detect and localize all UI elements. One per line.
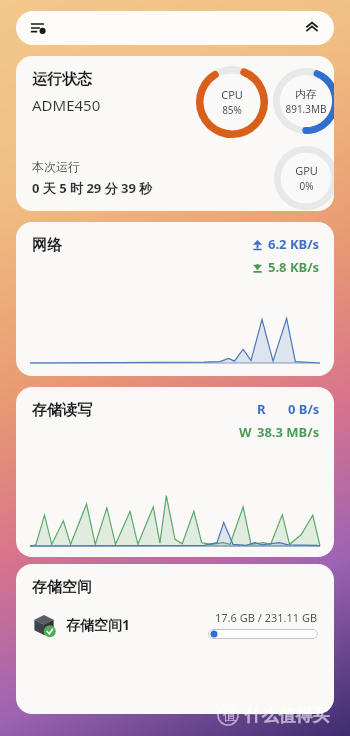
- staticText: 什么值得买: [240, 703, 330, 726]
- button[interactable]: 存储读写: [16, 387, 334, 557]
- staticText: W: [239, 423, 252, 441]
- button[interactable]: CPU 85%: [196, 66, 268, 138]
- staticText: 运行状态: [32, 70, 92, 89]
- staticText: 891.3MB: [285, 102, 327, 116]
- staticText: ADME450: [32, 95, 101, 115]
- button[interactable]: Menu settings: [30, 19, 48, 37]
- staticText: 17.6 GB / 231.11 GB: [215, 610, 318, 625]
- button[interactable]: Collapse: [304, 20, 320, 36]
- staticText: R: [257, 400, 266, 418]
- button[interactable]: 存储空间: [16, 564, 334, 714]
- staticText: 网络: [32, 236, 62, 255]
- staticText: 0%: [299, 179, 314, 193]
- button[interactable]: Menu settings: [16, 11, 334, 45]
- staticText: 5.8 KB/s: [268, 258, 320, 276]
- button[interactable]: GPU 0%: [274, 146, 334, 210]
- button[interactable]: 网络: [16, 222, 334, 376]
- staticText: 值: [223, 707, 236, 723]
- button[interactable]: 运行状态: [16, 56, 334, 211]
- staticText: 38.3 MB/s: [257, 423, 320, 441]
- staticText: 本次运行: [32, 159, 80, 174]
- staticText: 6.2 KB/s: [268, 235, 320, 253]
- staticText: 存储读写: [32, 401, 92, 420]
- staticText: 85%: [222, 103, 242, 117]
- staticText: 存储空间1: [66, 615, 131, 634]
- staticText: GPU: [295, 163, 318, 178]
- staticText: 内存: [295, 87, 317, 101]
- button[interactable]: 内存 891.3MB: [273, 68, 334, 134]
- staticText: 存储空间: [32, 578, 92, 597]
- staticText: CPU: [221, 87, 243, 102]
- staticText: 0 B/s: [288, 400, 320, 418]
- staticText: 0 天 5 时 29 分 39 秒: [32, 179, 153, 197]
